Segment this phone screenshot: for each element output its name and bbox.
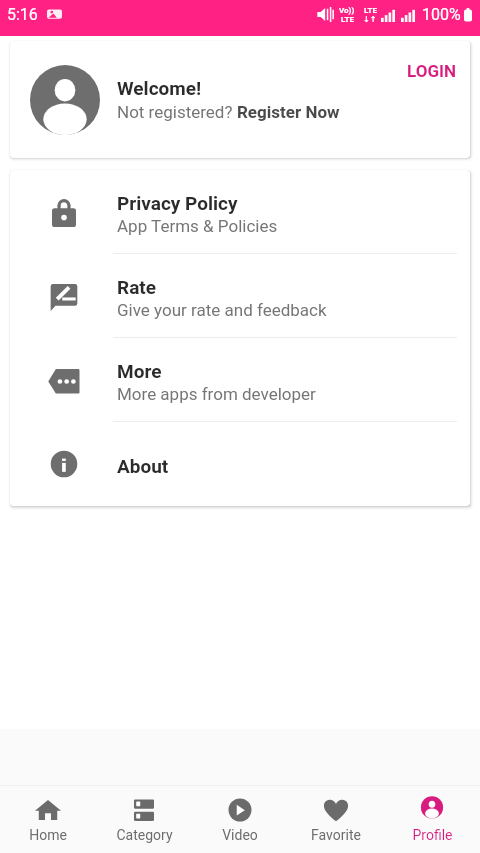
staticText: More apps from developer (117, 384, 316, 404)
button[interactable]: Welcome! (10, 41, 470, 158)
button[interactable]: Profile (384, 786, 480, 853)
button[interactable]: LOGIN (403, 57, 460, 85)
staticText: Category (116, 827, 173, 843)
button[interactable]: Privacy Policy (10, 170, 470, 254)
staticText: LTE (364, 6, 377, 15)
staticText: 100% (422, 5, 461, 24)
staticText: Privacy Policy (117, 192, 238, 214)
button[interactable]: Video (192, 786, 288, 853)
staticText: App Terms & Policies (117, 216, 278, 236)
button[interactable]: Home (0, 786, 96, 853)
staticText: Give your rate and feedback (117, 300, 327, 320)
staticText: LTE (341, 15, 354, 24)
staticText: Favorite (311, 827, 361, 843)
button[interactable]: Rate (10, 254, 470, 338)
button[interactable]: Category (96, 786, 192, 853)
staticText: Vo)) (339, 6, 355, 15)
staticText: Not registered? (117, 102, 237, 122)
staticText: Rate (117, 276, 157, 298)
staticText: ↓↑ (363, 15, 377, 24)
button[interactable]: About (10, 422, 470, 506)
staticText: Profile (412, 827, 453, 843)
button[interactable]: More (10, 338, 470, 422)
staticText: Register Now (237, 102, 340, 122)
button[interactable]: Favorite (288, 786, 384, 853)
staticText: Home (29, 827, 67, 843)
staticText: Welcome! (117, 77, 202, 99)
staticText: LOGIN (407, 61, 456, 81)
staticText: More (117, 360, 162, 382)
staticText: Video (222, 827, 258, 843)
staticText: 5:16 (7, 5, 38, 24)
staticText: About (117, 455, 169, 477)
